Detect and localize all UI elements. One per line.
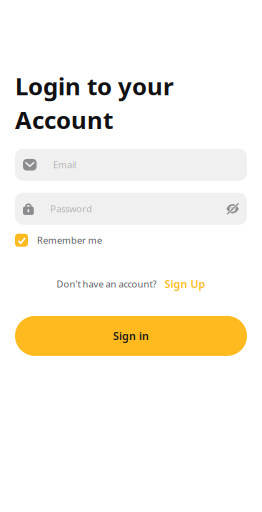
staticText: Login to your — [15, 70, 174, 102]
staticText: Password — [50, 202, 92, 215]
button[interactable]: Sign Up — [156, 277, 205, 291]
staticText: Sign Up — [164, 277, 205, 291]
staticText: Account — [15, 104, 113, 136]
staticText: Remember me — [37, 234, 102, 246]
staticText: Don't have an account? — [56, 278, 156, 290]
button[interactable]: Sign in — [15, 316, 247, 356]
staticText: Email — [53, 158, 76, 171]
button[interactable]: Remember me — [15, 234, 247, 247]
button[interactable]: Show password — [226, 203, 239, 214]
staticText: Sign in — [113, 329, 149, 343]
